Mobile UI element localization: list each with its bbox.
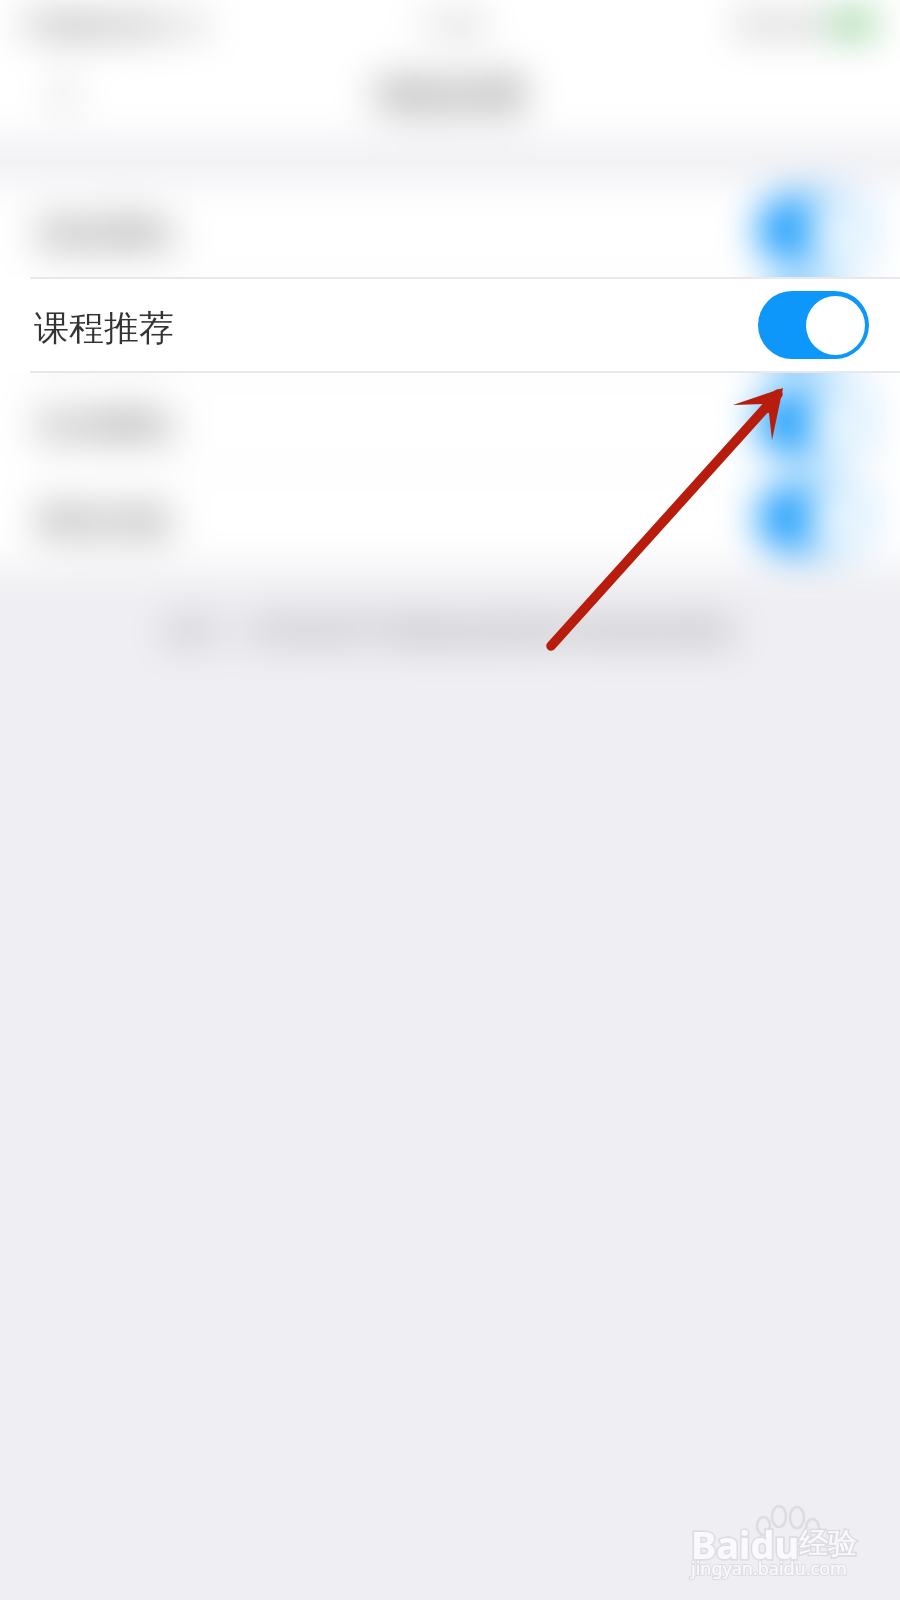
staticText: jingyan.baidu.com <box>691 1556 847 1581</box>
staticText: Baidu <box>691 1518 800 1570</box>
button[interactable]: Toggle switch <box>758 484 869 552</box>
button[interactable]: 课程推荐 <box>0 278 900 374</box>
staticText: 消息设置 <box>372 70 528 119</box>
staticText: 消息通知 <box>34 211 174 255</box>
button[interactable]: Toggle switch <box>758 196 869 264</box>
staticText: Baidu <box>691 1518 800 1570</box>
staticText: 84% <box>774 7 824 41</box>
staticText: 提示：关闭后将不再接收该类型的消息推送通知 <box>167 614 734 648</box>
staticText: 活动通知 <box>34 403 174 447</box>
button[interactable]: 活动通知 <box>0 374 900 470</box>
staticText: 课程推荐 <box>34 306 174 350</box>
staticText: 经验 <box>799 1525 857 1562</box>
staticText: 经验 <box>799 1525 857 1562</box>
staticText: 中国移动4G ıl ıl <box>20 6 206 43</box>
staticText: jingyan.baidu.com <box>691 1556 847 1581</box>
button[interactable]: 课程推荐 <box>0 277 900 373</box>
staticText: 课程推荐 <box>34 307 174 351</box>
button[interactable]: Toggle switch <box>758 388 869 456</box>
button[interactable]: Toggle switch <box>758 292 869 360</box>
button[interactable]: Toggle switch <box>758 291 869 359</box>
button[interactable]: 系统消息 <box>0 470 900 566</box>
staticText: 系统消息 <box>34 499 174 543</box>
button[interactable]: 消息通知 <box>0 182 900 278</box>
